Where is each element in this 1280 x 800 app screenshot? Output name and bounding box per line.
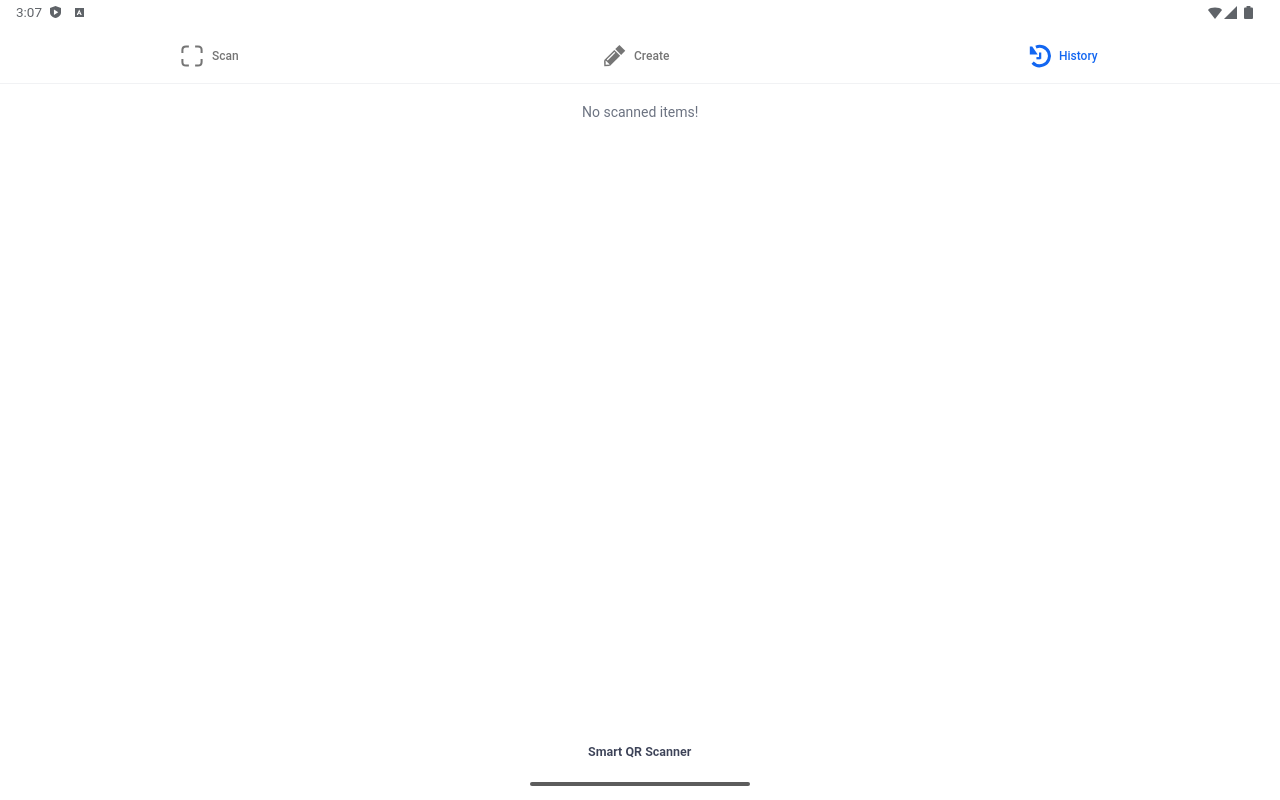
- staticText: Smart QR Scanner: [588, 744, 692, 759]
- staticText: History: [1059, 49, 1098, 63]
- button[interactable]: Create: [426, 28, 853, 83]
- staticText: No scanned items!: [582, 104, 699, 120]
- other: Mobile signal: [1224, 6, 1237, 19]
- other: Battery: [1244, 6, 1253, 19]
- other: Protected: [50, 6, 61, 18]
- staticText: 3:07: [16, 4, 43, 20]
- staticText: Create: [634, 49, 670, 63]
- other: Wi-Fi: [1208, 6, 1222, 19]
- button[interactable]: Scan: [0, 28, 426, 83]
- other: Notification: [75, 8, 84, 17]
- staticText: Scan: [212, 49, 239, 63]
- button[interactable]: History: [853, 28, 1280, 83]
